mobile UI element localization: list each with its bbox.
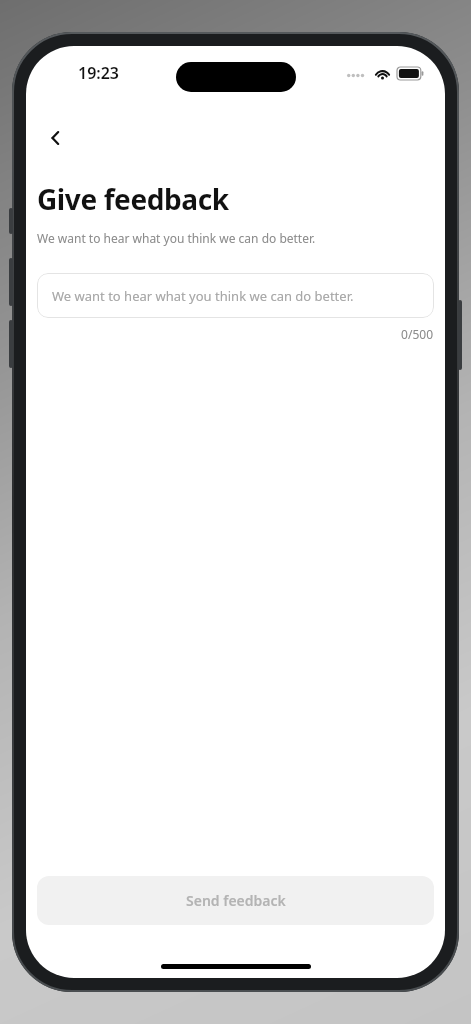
button[interactable]: Send feedback bbox=[37, 876, 434, 925]
staticText: 0/500 bbox=[26, 326, 433, 342]
staticText: 19:23 bbox=[78, 62, 120, 84]
staticText: Give feedback bbox=[37, 180, 229, 218]
staticText: We want to hear what you think we can do… bbox=[52, 287, 354, 305]
staticText: Send feedback bbox=[186, 891, 286, 910]
button[interactable]: Back bbox=[34, 116, 78, 160]
button[interactable]: We want to hear what you think we can do… bbox=[37, 273, 434, 318]
staticText: We want to hear what you think we can do… bbox=[37, 230, 316, 246]
